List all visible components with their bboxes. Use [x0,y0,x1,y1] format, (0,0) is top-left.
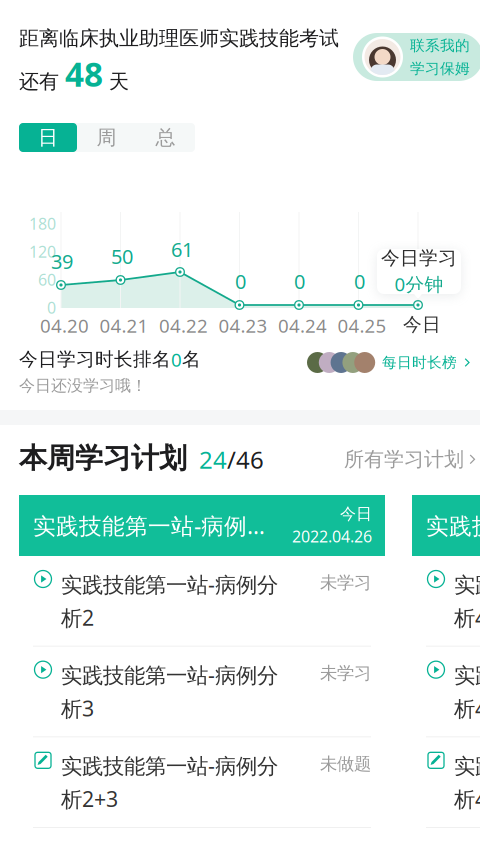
staticText: 今日学习 [381,247,457,269]
staticText: 60 [38,269,56,290]
staticText: 析2 [61,603,94,632]
staticText: 析42 [454,603,480,632]
staticText: 0 [354,268,365,295]
staticText: 析42+3 [454,785,480,813]
staticText: 24 [187,443,227,475]
staticText: 所有学习计划 [344,447,464,472]
button[interactable]: 每日时长榜 [307,352,469,373]
staticText: 今日 [340,504,372,524]
staticText: 周 [96,125,116,150]
staticText: 实践技能第一站-病例… [33,510,265,540]
staticText: 50 [111,243,133,270]
staticText: 日 [38,125,58,150]
staticText: 04.21 [99,313,148,338]
staticText: 04.20 [40,313,89,338]
staticText: 联系我的 [410,36,470,54]
staticText: 今日还没学习哦！ [19,376,147,395]
button[interactable]: 实践技能第一站-病例分 [19,647,385,737]
staticText: 今日 [403,313,441,336]
staticText: 实践技能第一站-病例分 [61,751,278,780]
staticText: 未学习 [320,663,371,684]
staticText: 还有 [19,69,59,94]
staticText: 天 [109,69,129,94]
button[interactable]: 联系我的 [353,33,480,81]
button[interactable]: 实践技能第一站-病例分 [412,556,480,647]
staticText: 04.22 [159,313,208,338]
button[interactable]: 实践技能第一站-病例分 [412,647,480,737]
staticText: 2022.04.26 [292,526,372,547]
staticText: 实践技能第一站-病例… [426,510,480,540]
staticText: 04.25 [337,313,386,338]
staticText: 总 [155,125,175,150]
staticText: 0 [171,347,182,372]
staticText: 0分钟 [394,272,443,296]
staticText: 学习保姆 [410,59,470,77]
staticText: 0 [235,268,246,295]
staticText: 实践技能第一站-病例分 [454,751,480,780]
staticText: 实践技能第一站-病例分 [61,570,278,598]
button[interactable]: 周 [77,123,136,152]
staticText: 120 [29,241,56,262]
staticText: 48 [65,52,103,96]
staticText: 每日时长榜 [382,353,457,371]
staticText: 04.23 [218,313,267,338]
staticText: 析43 [454,694,480,722]
button[interactable]: 所有学习计划 [344,447,475,472]
staticText: /46 [227,443,264,475]
button[interactable]: 总 [136,123,195,152]
staticText: 0 [47,297,56,318]
staticText: 距离临床执业助理医师实践技能考试 [19,26,339,51]
staticText: 今日学习时长排名 [19,348,171,371]
staticText: 析2+3 [61,785,118,813]
staticText: 39 [51,248,73,275]
staticText: 180 [29,213,56,234]
staticText: 0 [294,268,305,295]
staticText: 04.24 [278,313,327,338]
staticText: 析3 [61,694,94,722]
button[interactable]: 实践技能第一站-病例分 [412,737,480,828]
staticText: 本周学习计划 [19,441,187,475]
staticText: 未学习 [320,572,371,593]
staticText: 实践技能第一站-病例分 [454,661,480,689]
button[interactable]: 日 [19,123,77,152]
staticText: 实践技能第一站-病例分 [454,570,480,598]
staticText: 实践技能第一站-病例分 [61,661,278,689]
button[interactable]: 实践技能第一站-病例分 [19,737,385,828]
staticText: 未做题 [320,753,371,775]
button[interactable]: 实践技能第一站-病例分 [19,556,385,647]
staticText: 名 [182,348,201,371]
staticText: 61 [171,236,193,263]
